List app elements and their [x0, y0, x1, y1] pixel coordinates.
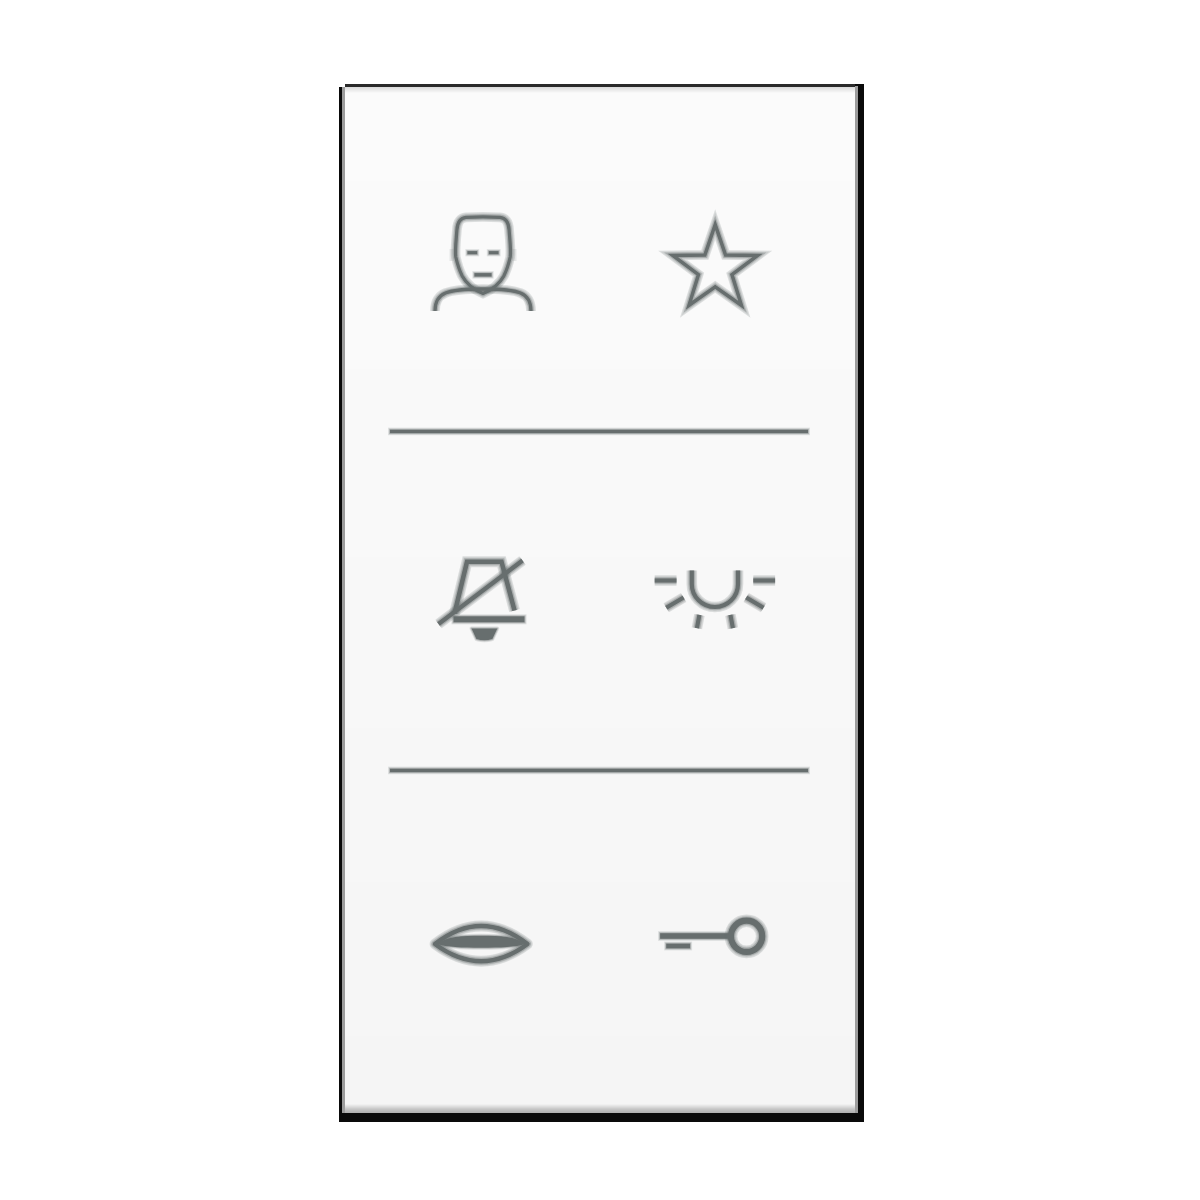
button[interactable]: Contacts — [345, 87, 600, 429]
button[interactable]: Unlock — [600, 773, 855, 1113]
button[interactable]: Voice — [345, 773, 600, 1113]
button[interactable]: Brightness — [600, 434, 855, 768]
button[interactable]: Favourites — [600, 87, 855, 429]
button[interactable]: Silence ringer — [345, 434, 600, 768]
